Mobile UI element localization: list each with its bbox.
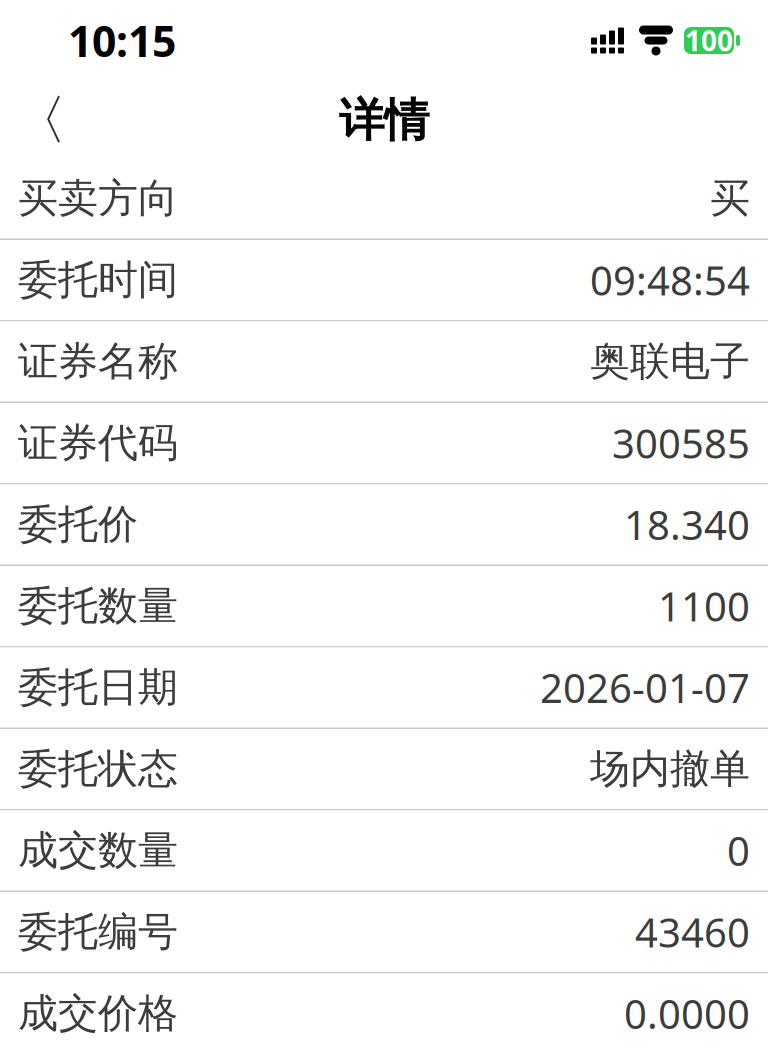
staticText: 09:48:54	[590, 253, 750, 306]
staticText: 委托数量	[18, 581, 178, 630]
button[interactable]: 委托日期	[0, 647, 768, 727]
staticText: 1100	[658, 579, 750, 632]
staticText: 委托价	[18, 500, 138, 549]
button[interactable]: 成交价格	[0, 973, 768, 1052]
staticText: 100	[685, 22, 733, 59]
staticText: 43460	[635, 905, 750, 958]
staticText: 委托时间	[18, 255, 178, 304]
staticText: 10:15	[68, 12, 176, 69]
staticText: 300585	[612, 416, 750, 469]
button[interactable]: 证券名称	[0, 321, 768, 401]
button[interactable]: Back	[0, 82, 80, 158]
button[interactable]: 委托时间	[0, 240, 768, 320]
staticText: 买卖方向	[18, 174, 178, 223]
button[interactable]: 委托编号	[0, 892, 768, 972]
staticText: 买	[710, 174, 750, 223]
staticText: 成交数量	[18, 826, 178, 875]
staticText: 委托日期	[18, 663, 178, 712]
staticText: 场内撤单	[590, 744, 750, 793]
staticText: 奥联电子	[590, 337, 750, 386]
staticText: 详情	[339, 93, 429, 148]
button[interactable]: 委托数量	[0, 566, 768, 646]
staticText: 0.0000	[624, 987, 750, 1040]
staticText: 2026-01-07	[540, 661, 750, 714]
staticText: 证券代码	[18, 418, 178, 467]
button[interactable]: 委托状态	[0, 729, 768, 809]
staticText: 18.340	[624, 498, 750, 551]
staticText: 0	[727, 824, 750, 877]
staticText: 委托状态	[18, 744, 178, 793]
button[interactable]: 买卖方向	[0, 158, 768, 238]
staticText: 〈	[13, 88, 66, 153]
staticText: 成交价格	[18, 989, 178, 1038]
button[interactable]: 委托价	[0, 484, 768, 564]
staticText: 委托编号	[18, 907, 178, 956]
button[interactable]: 成交数量	[0, 810, 768, 890]
button[interactable]: 证券代码	[0, 403, 768, 483]
staticText: 证券名称	[18, 337, 178, 386]
